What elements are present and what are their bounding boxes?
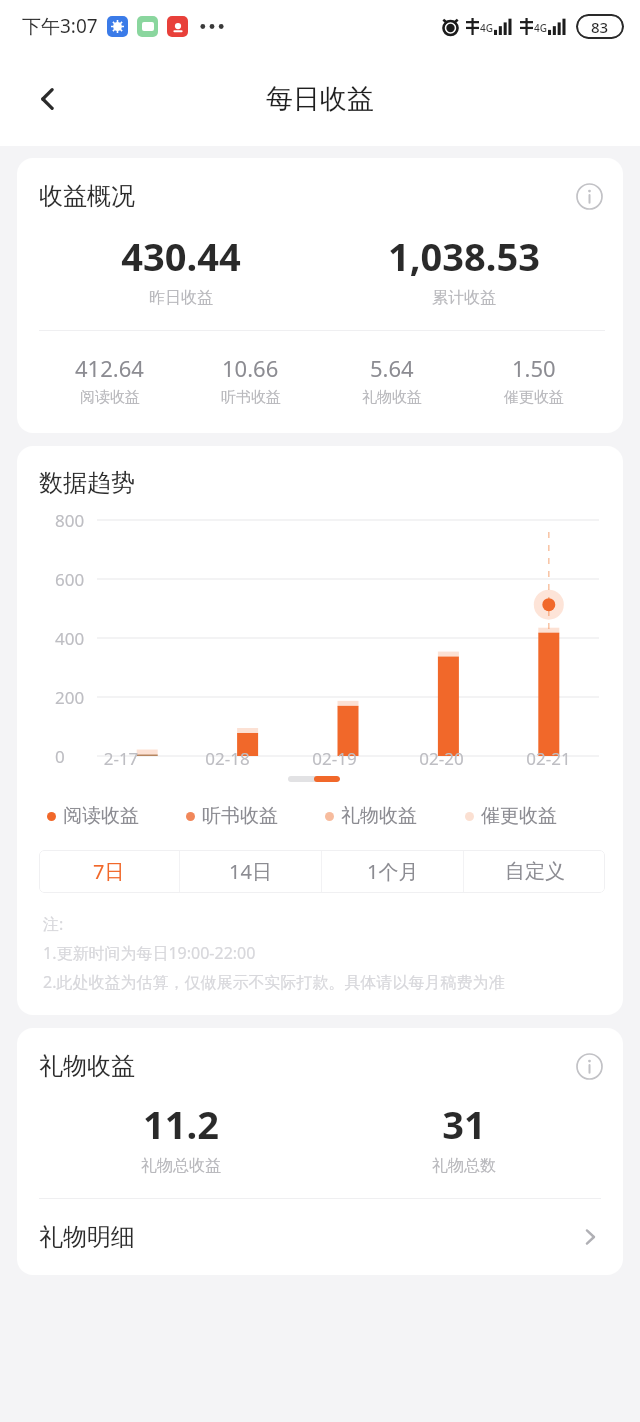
staticText: 4G <box>534 21 547 35</box>
staticText: 600 <box>55 568 85 591</box>
staticText: 200 <box>55 686 85 709</box>
staticText: 礼物总数 <box>432 1156 496 1176</box>
staticText: 7日 <box>93 858 125 885</box>
staticText: 礼物收益 <box>341 804 417 828</box>
staticText: 每日收益 <box>266 82 374 116</box>
staticText: 1.更新时间为每日19:00-22:00 <box>43 942 256 964</box>
staticText: 02-18 <box>174 747 281 770</box>
button[interactable]: 说明 <box>573 180 605 212</box>
staticText: 礼物收益 <box>362 388 422 407</box>
staticText: 10.66 <box>222 353 279 383</box>
staticText: 自定义 <box>505 859 565 884</box>
staticText: 5.64 <box>370 353 414 383</box>
staticText: 430.44 <box>121 230 241 282</box>
button[interactable]: 自定义 <box>464 850 605 893</box>
staticText: 400 <box>55 627 85 650</box>
staticText: 礼物明细 <box>39 1222 135 1252</box>
staticText: 1个月 <box>367 858 419 885</box>
staticText: 阅读收益 <box>63 804 139 828</box>
staticText: 阅读收益 <box>80 388 140 407</box>
staticText: 4G <box>480 21 493 35</box>
staticText: 14日 <box>229 858 272 885</box>
staticText: 2.此处收益为估算，仅做展示不实际打款。具体请以每月稿费为准 <box>43 971 505 993</box>
staticText: 1,038.53 <box>388 230 540 282</box>
staticText: 800 <box>55 509 85 532</box>
staticText: 催更收益 <box>481 804 557 828</box>
button[interactable]: 礼物明细 <box>17 1199 623 1275</box>
staticText: 2-17 <box>68 747 174 770</box>
staticText: 累计收益 <box>432 288 496 308</box>
staticText: 听书收益 <box>202 804 278 828</box>
button[interactable]: 7日 <box>39 850 179 893</box>
staticText: 1.50 <box>512 353 556 383</box>
staticText: 02-20 <box>388 747 495 770</box>
button[interactable]: 14日 <box>180 850 321 893</box>
staticText: 31 <box>442 1098 486 1150</box>
staticText: 下午3:07 <box>22 13 98 39</box>
staticText: 催更收益 <box>504 388 564 407</box>
staticText: 听书收益 <box>221 388 281 407</box>
staticText: 昨日收益 <box>149 288 213 308</box>
staticText: 83 <box>591 17 609 37</box>
staticText: 0 <box>55 745 65 768</box>
staticText: 02-21 <box>495 747 602 770</box>
staticText: 收益概况 <box>39 181 135 211</box>
staticText: 02-19 <box>281 747 388 770</box>
staticText: 礼物总收益 <box>141 1156 221 1176</box>
button[interactable]: 说明 <box>573 1050 605 1082</box>
button[interactable]: 1个月 <box>322 850 463 893</box>
staticText: 数据趋势 <box>39 468 135 498</box>
staticText: 注: <box>43 913 64 935</box>
staticText: 礼物收益 <box>39 1051 135 1081</box>
staticText: 11.2 <box>143 1098 219 1150</box>
button[interactable]: 返回 <box>24 75 72 123</box>
staticText: 412.64 <box>75 353 144 383</box>
